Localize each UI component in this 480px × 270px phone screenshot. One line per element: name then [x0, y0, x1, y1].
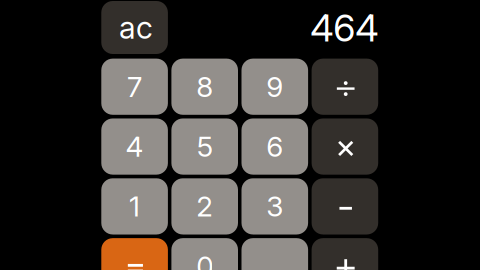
staticText: 5 [197, 130, 213, 163]
button[interactable] [312, 59, 378, 115]
staticText: 1 [129, 189, 140, 223]
staticText: 464 [310, 5, 378, 51]
button[interactable]: 1 [101, 178, 168, 234]
button[interactable]: 3 [241, 178, 308, 234]
button[interactable]: 0 [171, 238, 238, 270]
button[interactable]: 5 [171, 118, 238, 175]
button[interactable]: . [241, 238, 308, 270]
button[interactable]: 7 [101, 59, 168, 115]
button[interactable]: 6 [241, 118, 308, 175]
button[interactable] [101, 238, 168, 270]
button[interactable] [312, 178, 378, 234]
staticText: 0 [196, 249, 213, 270]
button[interactable] [312, 238, 378, 270]
button[interactable]: 9 [241, 59, 308, 115]
staticText: 9 [266, 70, 283, 104]
staticText: 2 [196, 189, 213, 223]
staticText: 7 [127, 70, 142, 104]
button[interactable]: 8 [171, 59, 238, 115]
button[interactable]: 4 [101, 118, 168, 175]
button[interactable] [312, 118, 378, 175]
staticText: 6 [266, 130, 283, 163]
staticText: ac [119, 9, 153, 46]
staticText: 3 [266, 189, 283, 223]
button[interactable]: ac [101, 1, 168, 54]
staticText: 8 [196, 70, 213, 104]
staticText: 4 [126, 130, 144, 163]
button[interactable]: 2 [171, 178, 238, 234]
